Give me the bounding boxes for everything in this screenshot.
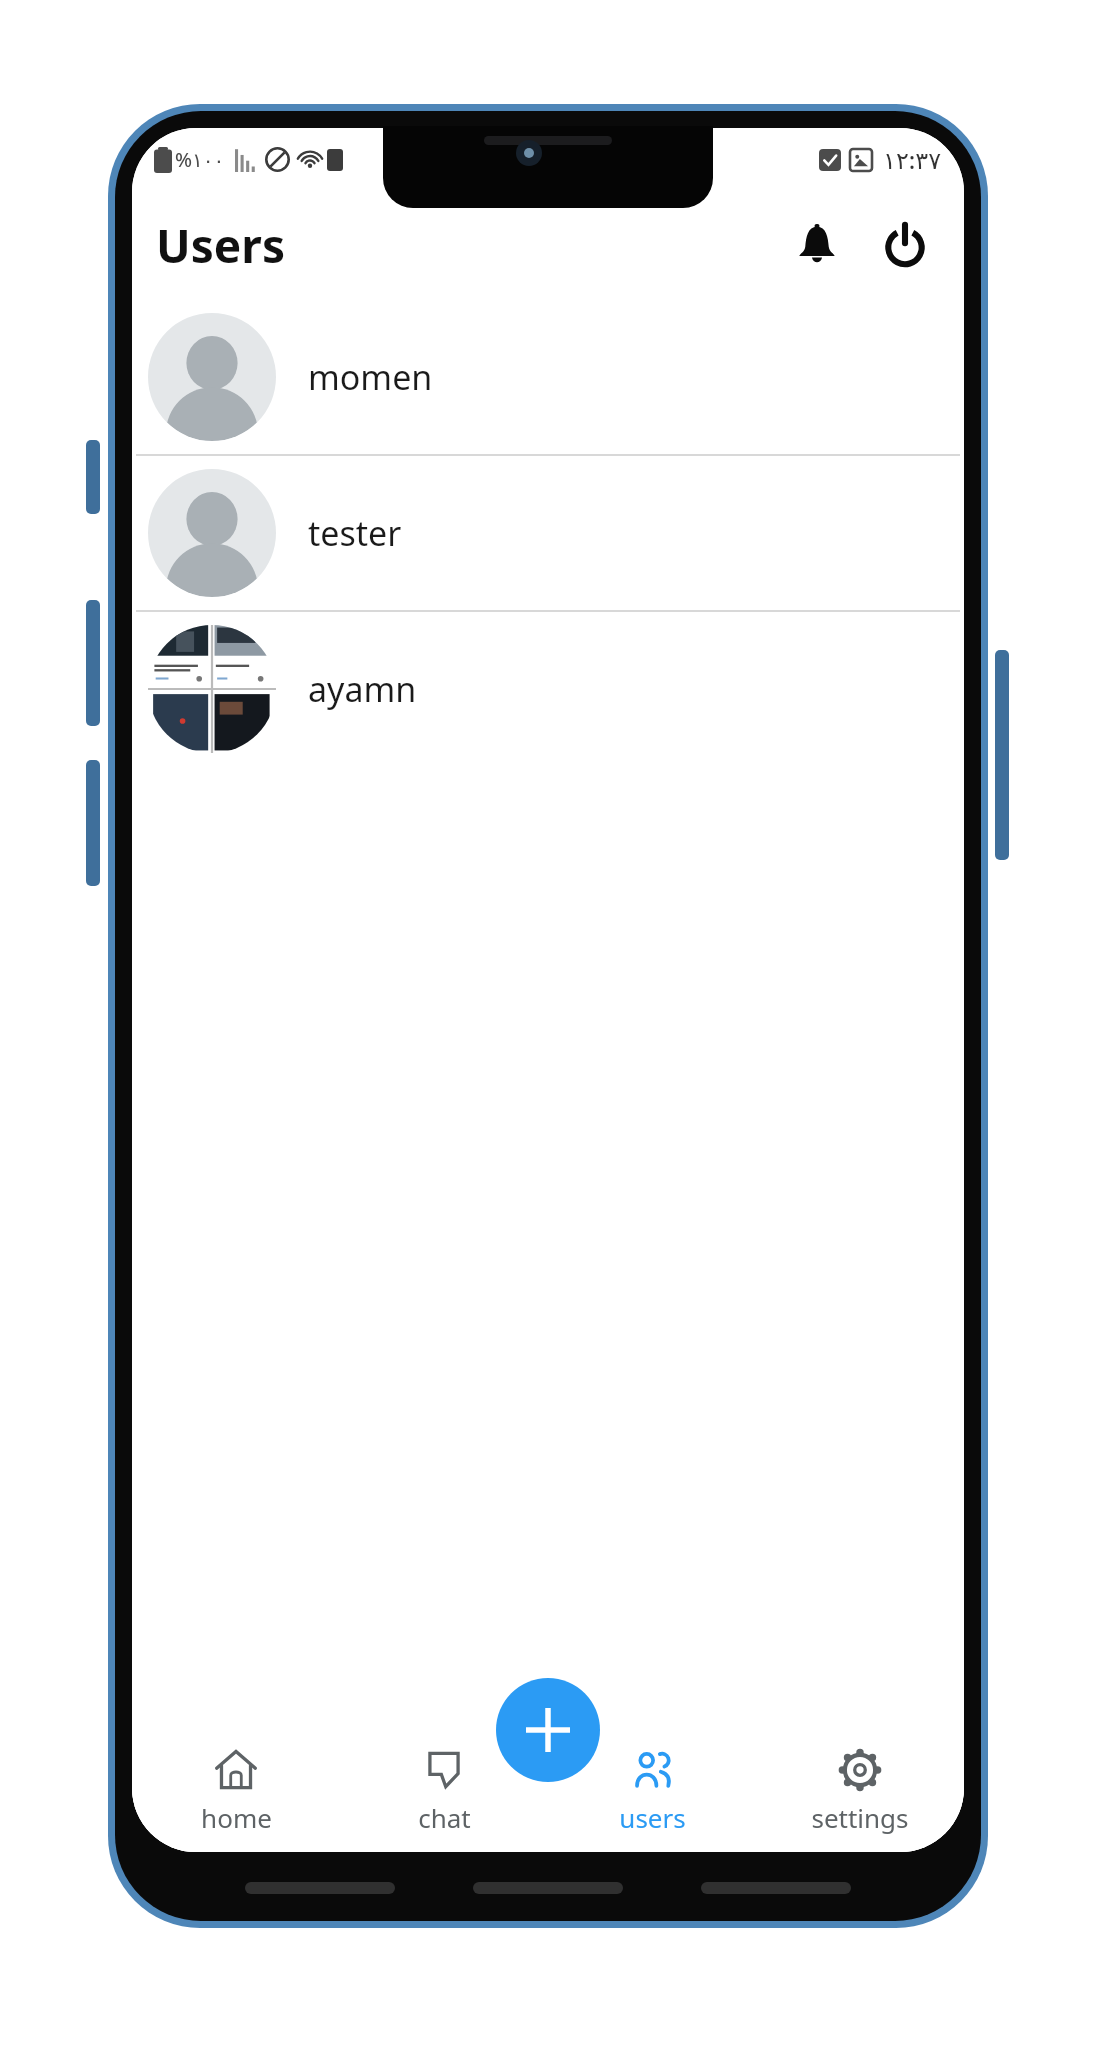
staticText: Users bbox=[156, 214, 285, 277]
button[interactable]: users bbox=[548, 1734, 756, 1852]
button[interactable]: Notifications bbox=[782, 210, 852, 280]
button[interactable]: Log out bbox=[870, 210, 940, 280]
staticText: ayamn bbox=[308, 666, 417, 712]
staticText: tester bbox=[308, 510, 402, 556]
staticText: %١٠٠ bbox=[175, 146, 225, 173]
button[interactable]: home bbox=[132, 1734, 340, 1852]
staticText: settings bbox=[811, 1800, 909, 1835]
button[interactable]: chat bbox=[340, 1734, 548, 1852]
staticText: home bbox=[201, 1800, 272, 1835]
staticText: ١٢:٣٧ bbox=[883, 143, 942, 176]
staticText: chat bbox=[418, 1800, 471, 1835]
staticText: users bbox=[619, 1800, 686, 1835]
button[interactable]: settings bbox=[756, 1734, 964, 1852]
button[interactable]: Add user bbox=[496, 1678, 600, 1782]
staticText: momen bbox=[308, 354, 433, 400]
button[interactable]: momen bbox=[132, 300, 964, 454]
button[interactable]: tester bbox=[132, 456, 964, 610]
button[interactable]: ayamn bbox=[132, 612, 964, 766]
